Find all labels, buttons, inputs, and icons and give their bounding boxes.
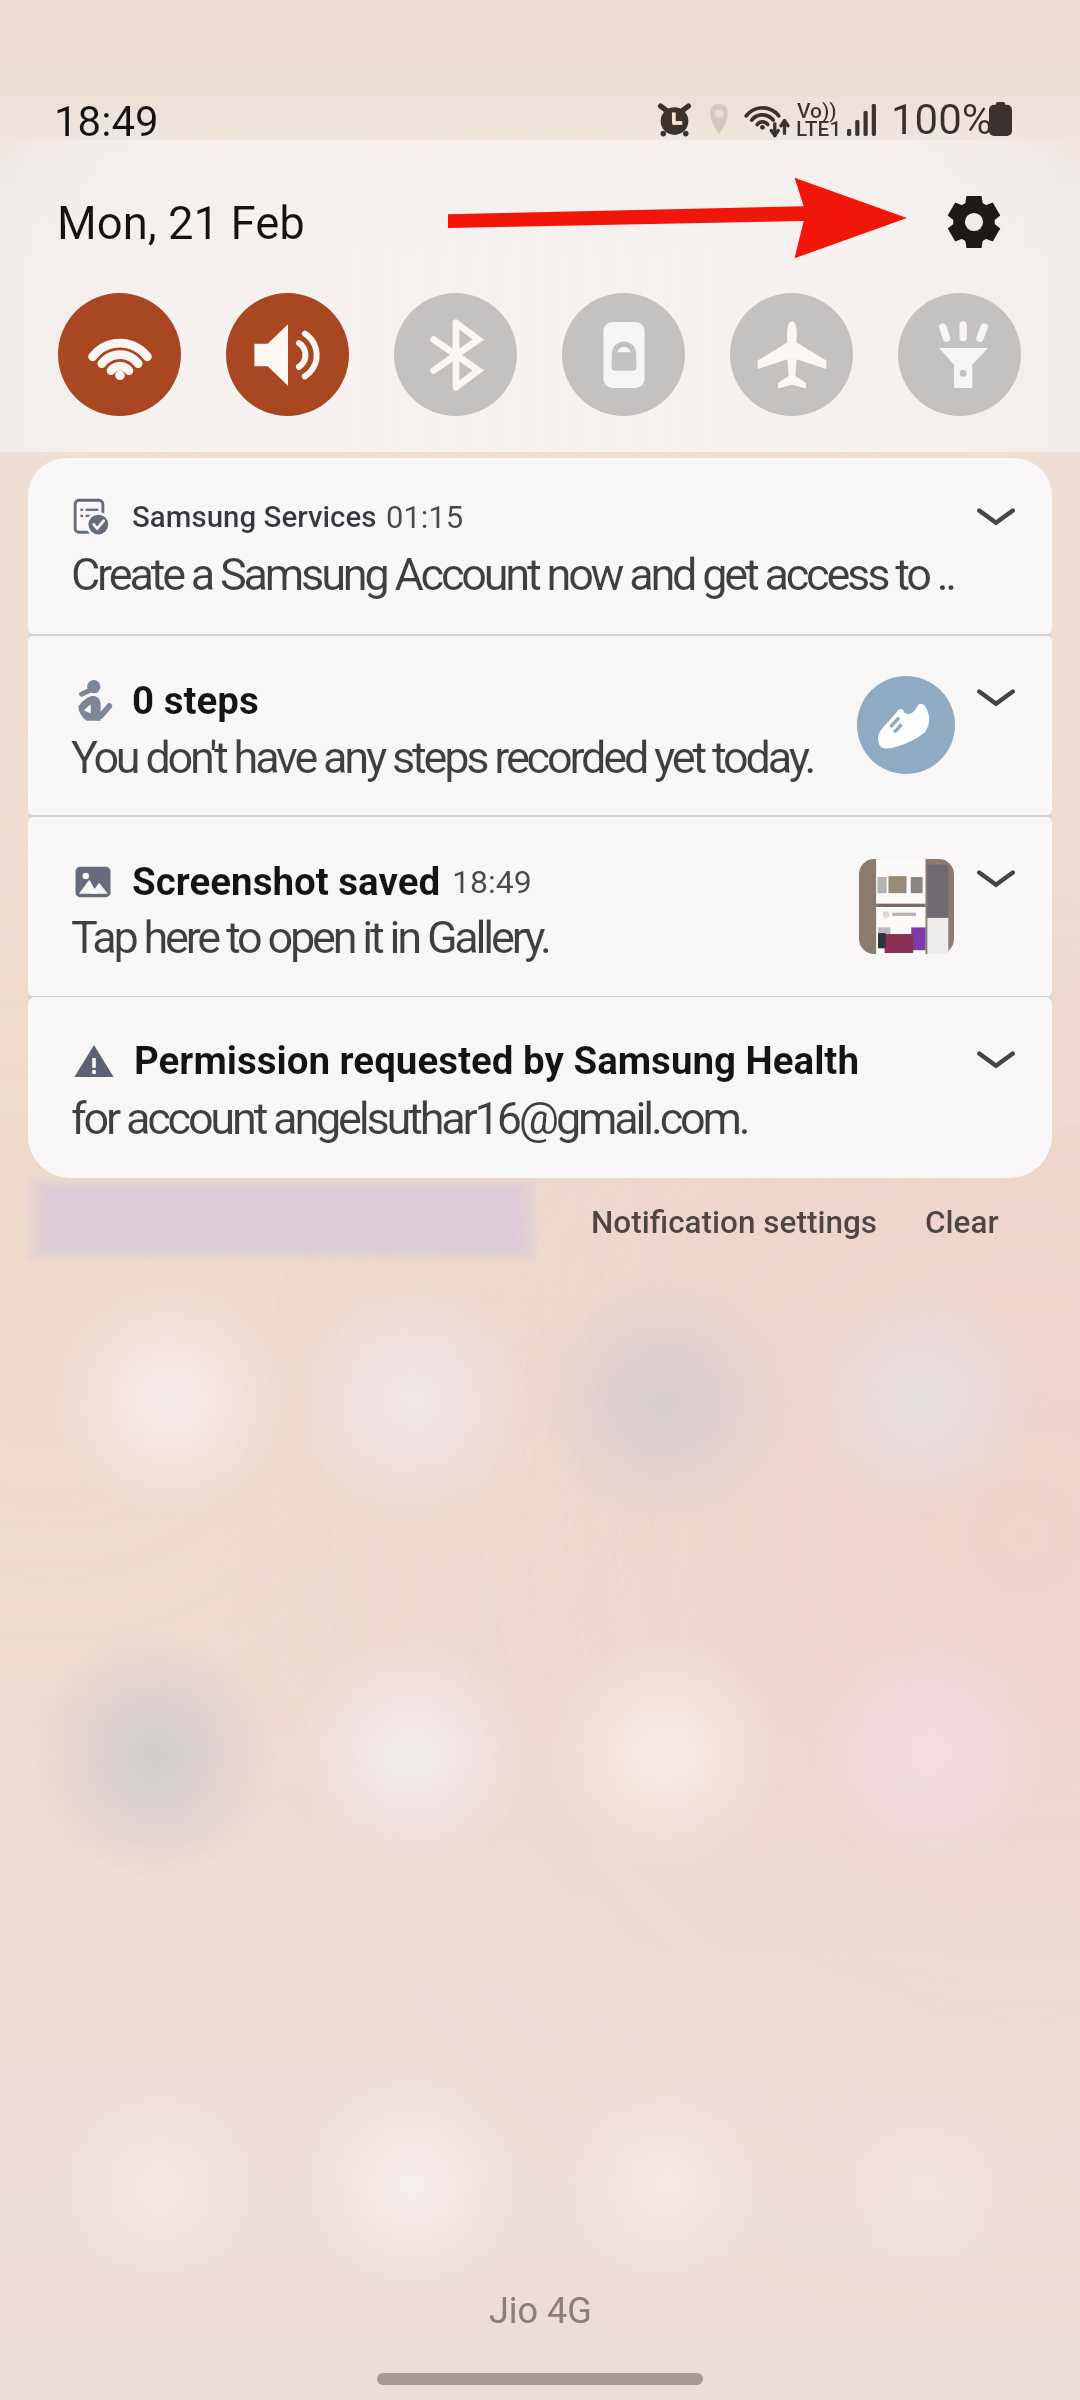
button[interactable]: Flight mode — [730, 293, 853, 416]
button[interactable]: Expand notification — [968, 1030, 1024, 1086]
button[interactable]: Permission requested by Samsung Health — [28, 997, 1052, 1178]
staticText: Clear — [925, 1204, 999, 1241]
button[interactable]: Expand notification — [968, 668, 1024, 724]
staticText: Tap here to open it in Gallery. — [71, 911, 549, 964]
button[interactable]: Bluetooth — [394, 293, 517, 416]
staticText: Jio 4G — [489, 2290, 592, 2332]
button[interactable]: 0 steps — [28, 635, 1052, 816]
button[interactable]: Samsung Services — [28, 458, 1052, 635]
button[interactable]: Notification settings — [571, 1188, 898, 1257]
button[interactable]: Screenshot saved — [28, 816, 1052, 997]
staticText: Create a Samsung Account now and get acc… — [71, 548, 954, 601]
button[interactable]: Auto rotate — [562, 293, 685, 416]
staticText: 0 steps — [132, 678, 259, 723]
staticText: Notification settings — [591, 1204, 878, 1241]
button[interactable]: Settings — [948, 196, 1000, 248]
button[interactable]: Expand notification — [968, 849, 1024, 905]
staticText: 18:49 — [452, 863, 532, 901]
staticText: 100% — [891, 95, 993, 144]
staticText: Mon, 21 Feb — [57, 197, 305, 250]
staticText: Samsung Services — [132, 500, 377, 535]
staticText: 18:49 — [54, 97, 159, 146]
staticText: Vo)) — [797, 99, 837, 124]
button[interactable]: Sound — [226, 293, 349, 416]
staticText: Screenshot saved — [132, 859, 441, 904]
button[interactable]: Flashlight — [898, 293, 1021, 416]
staticText: 01:15 — [386, 499, 464, 535]
staticText: LTE1 — [796, 117, 842, 142]
button[interactable]: Expand notification — [968, 487, 1024, 543]
button[interactable]: Wi-Fi — [58, 293, 181, 416]
staticText: for account angelsuthar16@gmail.com. — [71, 1092, 748, 1145]
button[interactable]: Clear — [905, 1188, 1019, 1257]
staticText: Permission requested by Samsung Health — [134, 1038, 859, 1083]
staticText: You don't have any steps recorded yet to… — [71, 731, 814, 784]
